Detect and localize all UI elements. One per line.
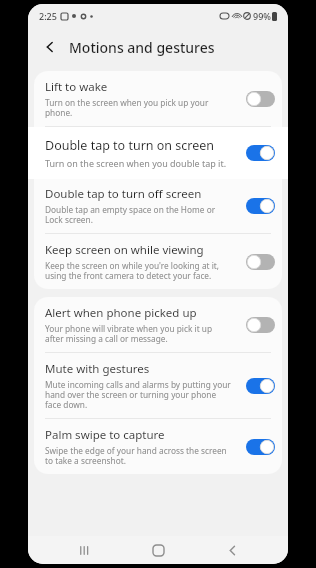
button[interactable]: Keep screen on while viewing: [34, 234, 282, 289]
staticText: Palm swipe to capture: [45, 427, 165, 443]
staticText: Keep the screen on while you're looking …: [45, 260, 220, 281]
button[interactable]: Switch on: [246, 439, 275, 455]
staticText: Swipe the edge of your hand across the s…: [45, 445, 227, 466]
button[interactable]: Palm swipe to capture: [34, 419, 282, 474]
staticText: 99%: [253, 10, 271, 22]
button[interactable]: Home: [140, 536, 176, 564]
button[interactable]: Lift to wake: [34, 71, 282, 127]
staticText: Lift to wake: [45, 79, 108, 95]
button[interactable]: Switch on: [246, 378, 275, 394]
staticText: Motions and gestures: [69, 38, 215, 57]
staticText: Turn on the screen when you double tap i…: [45, 157, 227, 169]
staticText: Double tap to turn off screen: [45, 186, 202, 202]
button[interactable]: Back: [39, 36, 61, 58]
button[interactable]: Double tap to turn on screen: [28, 127, 288, 179]
button[interactable]: Switch off: [246, 254, 275, 270]
staticText: Double tap to turn on screen: [45, 137, 215, 154]
button[interactable]: Double tap to turn off screen: [34, 178, 282, 234]
button[interactable]: Alert when phone picked up: [34, 297, 282, 353]
button[interactable]: Recent apps: [66, 536, 102, 564]
button[interactable]: Mute with gestures: [34, 353, 282, 419]
button[interactable]: Switch on: [246, 145, 275, 161]
staticText: 2:25: [39, 10, 57, 22]
staticText: Your phone will vibrate when you pick it…: [45, 323, 213, 344]
staticText: Mute with gestures: [45, 361, 150, 377]
button[interactable]: Switch off: [246, 91, 275, 107]
staticText: Mute incoming calls and alarms by puttin…: [45, 379, 231, 410]
staticText: Keep screen on while viewing: [45, 242, 204, 258]
button[interactable]: Switch off: [246, 317, 275, 333]
button[interactable]: Switch on: [246, 198, 275, 214]
button[interactable]: Back: [214, 536, 250, 564]
staticText: Turn on the screen when you pick up your…: [45, 97, 209, 118]
staticText: Double tap an empty space on the Home or…: [45, 204, 216, 225]
staticText: Alert when phone picked up: [45, 305, 197, 321]
